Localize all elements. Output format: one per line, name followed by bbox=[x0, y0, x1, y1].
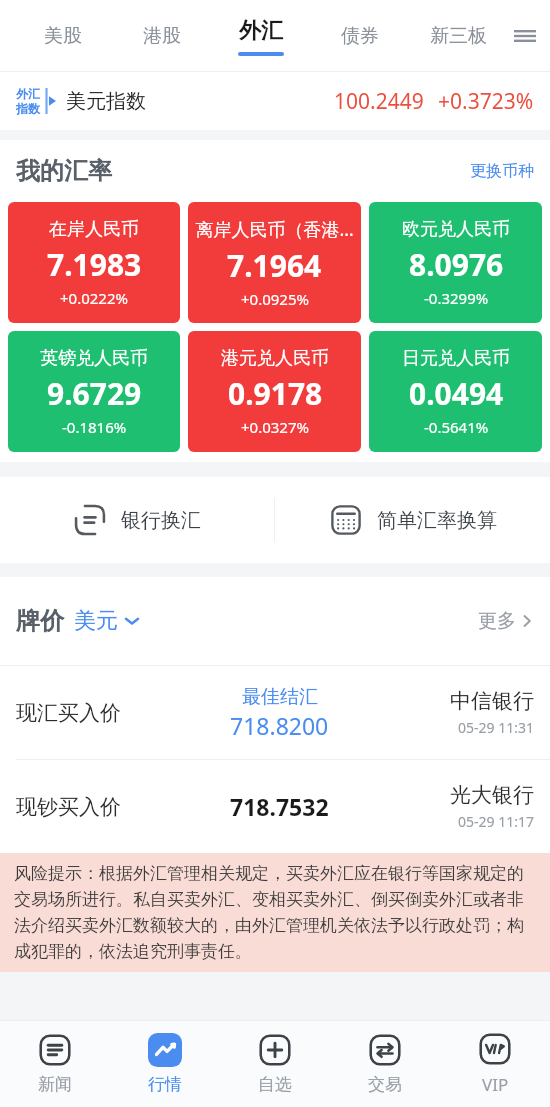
staticText: 交易 bbox=[368, 1074, 402, 1095]
staticText: 0.9178 bbox=[228, 373, 323, 414]
staticText: 美股 bbox=[44, 24, 82, 48]
button[interactable]: 日元兑人民币 bbox=[369, 331, 542, 452]
button[interactable]: 现汇买入价 bbox=[0, 666, 550, 759]
button[interactable]: 新闻 bbox=[0, 1021, 110, 1107]
staticText: 7.1983 bbox=[47, 244, 142, 285]
staticText: 05-29 11:31 bbox=[458, 718, 534, 737]
button[interactable]: 美元 bbox=[74, 607, 140, 635]
button[interactable]: 美股 bbox=[14, 0, 112, 72]
staticText: 05-29 11:17 bbox=[458, 812, 534, 831]
button[interactable]: 更换币种 bbox=[470, 161, 534, 181]
button[interactable]: 外汇 bbox=[211, 0, 310, 72]
staticText: 7.1964 bbox=[227, 245, 322, 286]
staticText: 自选 bbox=[258, 1074, 292, 1095]
button[interactable]: 更多 bbox=[478, 609, 534, 633]
staticText: +0.0925% bbox=[241, 289, 309, 309]
button[interactable]: 港股 bbox=[112, 0, 211, 72]
staticText: 风险提示：根据外汇管理相关规定，买卖外汇应在银行等国家规定的交易场所进行。私自买… bbox=[14, 863, 536, 962]
staticText: -0.1816% bbox=[62, 417, 127, 437]
staticText: 更多 bbox=[478, 609, 516, 633]
staticText: 日元兑人民币 bbox=[402, 347, 510, 370]
staticText: 9.6729 bbox=[47, 373, 142, 414]
button[interactable]: 交易 bbox=[330, 1021, 440, 1107]
button[interactable]: Menu bbox=[508, 0, 542, 72]
staticText: 8.0976 bbox=[409, 244, 504, 285]
staticText: 美元指数 bbox=[66, 89, 146, 114]
staticText: +0.0222% bbox=[60, 288, 128, 308]
button[interactable]: 现钞买入价 bbox=[0, 760, 550, 853]
staticText: 718.8200 bbox=[230, 710, 329, 741]
staticText: 在岸人民币 bbox=[49, 218, 139, 241]
staticText: 0.0494 bbox=[409, 373, 504, 414]
button[interactable]: VIP bbox=[440, 1021, 550, 1107]
staticText: -0.5641% bbox=[424, 417, 489, 437]
staticText: 离岸人民币（香港… bbox=[195, 217, 354, 242]
button[interactable]: 新三板 bbox=[409, 0, 508, 72]
staticText: 港元兑人民币 bbox=[221, 347, 329, 370]
button[interactable]: 银行换汇 bbox=[0, 477, 274, 563]
staticText: 100.2449 bbox=[334, 87, 424, 116]
button[interactable]: 简单汇率换算 bbox=[275, 477, 550, 563]
staticText: 现钞买入价 bbox=[16, 794, 121, 820]
button[interactable]: 在岸人民币 bbox=[8, 202, 180, 323]
staticText: -0.3299% bbox=[424, 288, 489, 308]
button[interactable]: 外汇 bbox=[0, 72, 550, 130]
button[interactable]: 英镑兑人民币 bbox=[8, 331, 180, 452]
staticText: 英镑兑人民币 bbox=[40, 347, 148, 370]
staticText: 现汇买入价 bbox=[16, 700, 121, 726]
staticText: VIP bbox=[482, 1073, 509, 1096]
staticText: 我的汇率 bbox=[16, 156, 112, 186]
staticText: 光大银行 bbox=[450, 782, 534, 808]
staticText: 银行换汇 bbox=[121, 508, 201, 533]
staticText: 更换币种 bbox=[470, 161, 534, 181]
staticText: 指数 bbox=[16, 101, 40, 116]
staticText: 行情 bbox=[148, 1074, 182, 1095]
button[interactable]: 离岸人民币（香港… bbox=[188, 202, 361, 323]
staticText: 债券 bbox=[341, 24, 379, 48]
staticText: 欧元兑人民币 bbox=[402, 218, 510, 241]
button[interactable]: 欧元兑人民币 bbox=[369, 202, 542, 323]
staticText: 外汇 bbox=[16, 86, 40, 101]
staticText: 中信银行 bbox=[450, 688, 534, 714]
staticText: 美元 bbox=[74, 607, 118, 635]
staticText: 牌价 bbox=[16, 606, 64, 636]
staticText: +0.3723% bbox=[438, 87, 534, 116]
staticText: 新三板 bbox=[430, 24, 487, 48]
staticText: 最佳结汇 bbox=[242, 685, 318, 709]
button[interactable]: 自选 bbox=[220, 1021, 330, 1107]
staticText: 718.7532 bbox=[230, 791, 329, 822]
staticText: 简单汇率换算 bbox=[377, 508, 497, 533]
staticText: 外汇 bbox=[239, 17, 283, 45]
staticText: +0.0327% bbox=[241, 417, 309, 437]
staticText: 新闻 bbox=[38, 1074, 72, 1095]
button[interactable]: 债券 bbox=[310, 0, 409, 72]
button[interactable]: 港元兑人民币 bbox=[188, 331, 361, 452]
button[interactable]: 行情 bbox=[110, 1021, 220, 1107]
staticText: 港股 bbox=[143, 24, 181, 48]
